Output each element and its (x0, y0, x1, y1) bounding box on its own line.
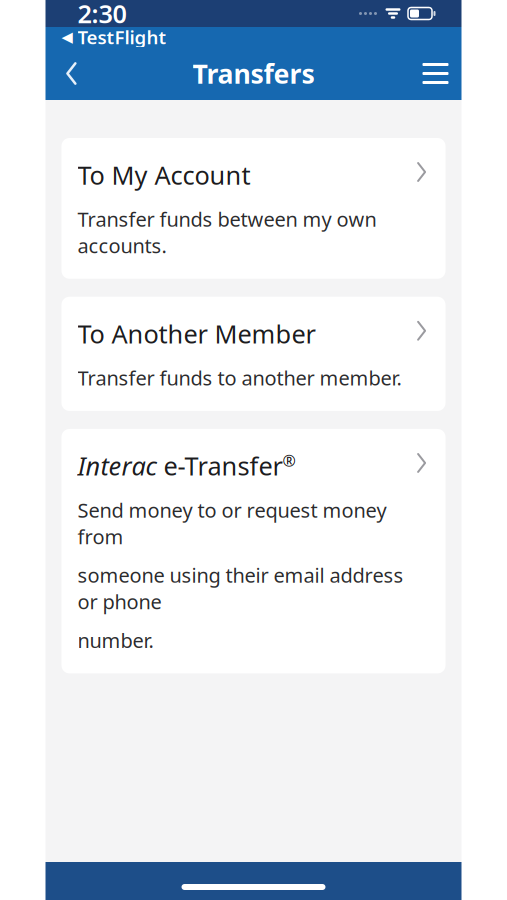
staticText: TestFlight (77, 25, 166, 49)
staticText: someone using their email address or pho… (77, 562, 403, 615)
staticText: ◀ (61, 29, 72, 45)
button[interactable]: To My Account (61, 138, 445, 279)
staticText: e-Transfer (156, 449, 282, 483)
staticText: number. (77, 627, 153, 653)
staticText: 2:30 (77, 0, 126, 30)
button[interactable]: Menu (409, 47, 461, 99)
staticText: To My Account (77, 158, 250, 192)
staticText: Transfer funds to another member. (77, 364, 401, 391)
staticText: To Another Member (77, 317, 315, 350)
staticText: Transfers (192, 56, 314, 91)
button[interactable]: Interac (61, 429, 445, 673)
button[interactable]: To Another Member (61, 297, 445, 411)
button[interactable]: Back (45, 47, 97, 99)
staticText: Interac (77, 449, 156, 483)
staticText: Transfer funds between my own accounts. (77, 206, 376, 259)
button[interactable]: ◀ (45, 27, 461, 47)
staticText: ® (282, 450, 295, 471)
staticText: Send money to or request money from (77, 497, 386, 550)
